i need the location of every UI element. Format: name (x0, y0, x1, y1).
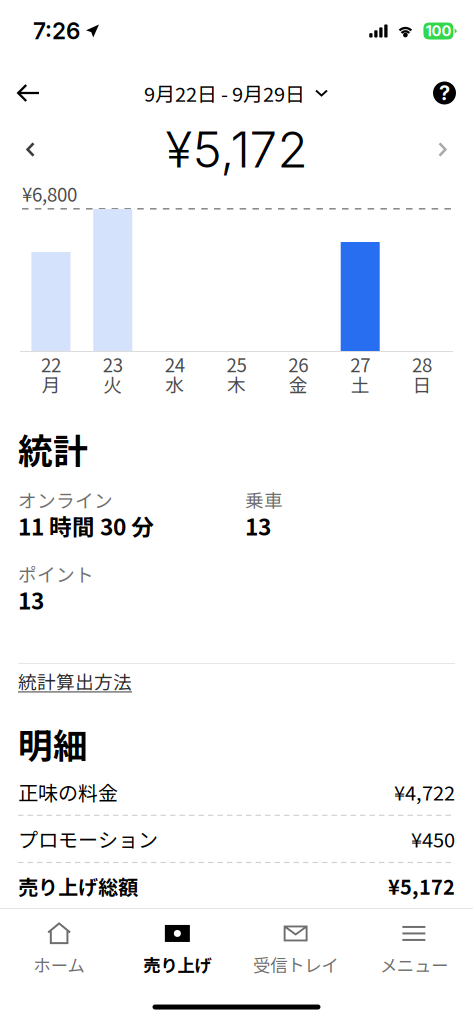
staticText: 13 (18, 583, 44, 616)
staticText: 統計 (18, 424, 88, 474)
staticText: オンライン (18, 486, 113, 513)
staticText: ホーム (34, 952, 85, 977)
staticText: 売り上げ (143, 952, 211, 977)
button[interactable]: 9月22日 - 9月29日 (144, 62, 328, 124)
staticText: 乗車 (245, 486, 283, 513)
button[interactable]: 前の週 (0, 124, 61, 175)
staticText: 明細 (18, 719, 88, 769)
staticText: 27 (350, 350, 370, 377)
button[interactable]: 売り上げ (118, 909, 236, 990)
button[interactable]: ホーム (0, 909, 118, 990)
staticText: ポイント (18, 560, 94, 587)
staticText: 売り上げ総額 (18, 872, 138, 901)
staticText: ¥5,172 (165, 120, 307, 179)
staticText: メニュー (380, 952, 448, 977)
button[interactable]: 統計算出方法 (18, 664, 132, 693)
staticText: 正味の料金 (18, 777, 118, 806)
staticText: 水 (165, 370, 184, 397)
staticText: 25 (226, 350, 246, 377)
staticText: 金 (289, 370, 308, 397)
staticText: ¥450 (411, 824, 455, 853)
staticText: 23 (103, 350, 123, 377)
button[interactable]: 戻る (0, 62, 56, 124)
staticText: 11 時間 30 分 (18, 509, 154, 542)
staticText: 28 (412, 350, 432, 377)
button[interactable]: 次の週 (412, 124, 473, 175)
staticText: 土 (351, 370, 370, 397)
button[interactable]: メニュー (355, 909, 473, 990)
staticText: 火 (103, 370, 122, 397)
staticText: 受信トレイ (253, 952, 338, 977)
staticText: 木 (227, 370, 246, 397)
staticText: 月 (41, 370, 60, 397)
staticText: 9月22日 - 9月29日 (144, 78, 305, 107)
staticText: 日 (413, 370, 432, 397)
staticText: 7:26 (33, 17, 80, 45)
staticText: ? (439, 81, 450, 105)
staticText: ¥5,172 (388, 872, 455, 901)
staticText: 100 (425, 22, 451, 40)
button[interactable]: 受信トレイ (236, 909, 355, 990)
staticText: ¥4,722 (394, 777, 455, 806)
staticText: 26 (288, 350, 308, 377)
staticText: 13 (245, 509, 271, 542)
staticText: 統計算出方法 (18, 667, 132, 694)
staticText: 22 (41, 350, 61, 377)
staticText: 24 (165, 350, 185, 377)
staticText: プロモーション (18, 824, 158, 853)
staticText: ¥6,800 (22, 180, 77, 207)
button[interactable]: ヘルプ (416, 62, 473, 124)
